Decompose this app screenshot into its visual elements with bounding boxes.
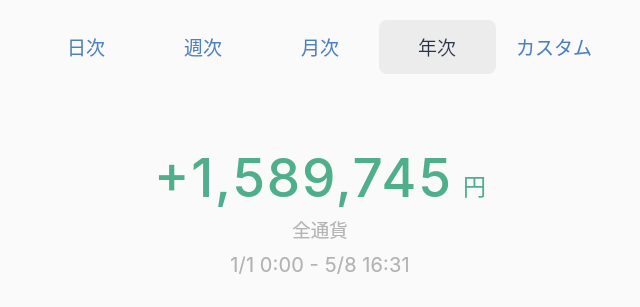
staticText: カスタム — [516, 33, 593, 61]
button[interactable]: 日次 — [27, 20, 145, 74]
staticText: 年次 — [418, 33, 457, 61]
button[interactable]: 週次 — [145, 20, 262, 74]
staticText: 円 — [463, 168, 486, 201]
staticText: 週次 — [184, 33, 223, 61]
staticText: +1,589,745 — [154, 146, 453, 210]
staticText: 全通貨 — [292, 216, 348, 243]
button[interactable]: カスタム — [496, 20, 613, 74]
staticText: 月次 — [301, 33, 340, 61]
button[interactable]: 年次 — [379, 20, 496, 74]
staticText: 1/1 0:00 - 5/8 16:31 — [230, 253, 410, 277]
button[interactable]: 月次 — [262, 20, 379, 74]
staticText: 日次 — [67, 33, 106, 61]
